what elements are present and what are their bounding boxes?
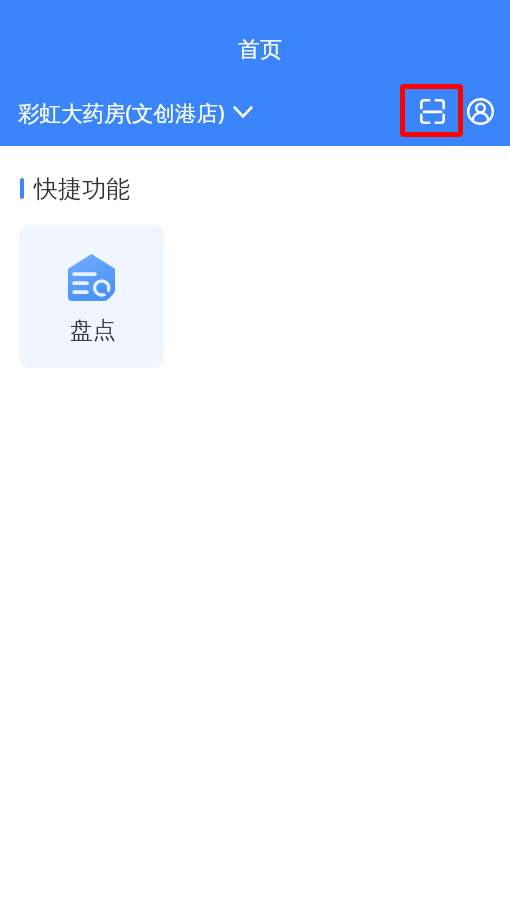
button[interactable]: Scan barcode [400,84,463,137]
staticText: 首页 [238,36,282,64]
staticText: 彩虹大药房(文创港店) [18,98,225,127]
button[interactable]: Account [464,95,497,128]
staticText: 盘点 [70,316,116,345]
staticText: 快捷功能 [34,174,130,204]
button[interactable]: 盘点 [19,225,164,368]
button[interactable]: 彩虹大药房(文创港店) [18,98,253,127]
